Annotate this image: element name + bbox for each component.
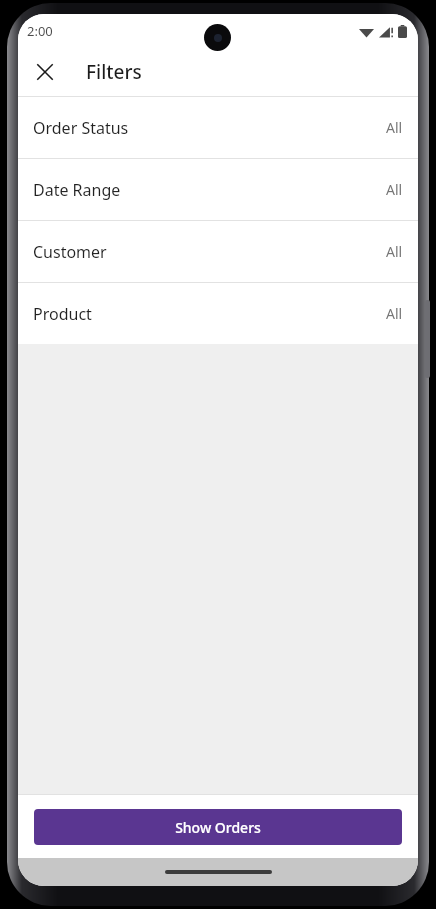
- staticText: Date Range: [33, 179, 386, 201]
- button[interactable]: Product: [18, 283, 418, 344]
- staticText: Show Orders: [175, 818, 261, 837]
- button[interactable]: Show Orders: [34, 809, 402, 845]
- staticText: All: [386, 180, 403, 199]
- staticText: All: [386, 242, 403, 261]
- button[interactable]: Close: [29, 56, 61, 88]
- staticText: Customer: [33, 241, 386, 263]
- button[interactable]: Order Status: [18, 97, 418, 158]
- staticText: All: [386, 304, 403, 323]
- button[interactable]: Customer: [18, 221, 418, 282]
- staticText: Product: [33, 303, 386, 325]
- staticText: Order Status: [33, 117, 386, 139]
- staticText: 2:00: [27, 22, 53, 40]
- staticText: All: [386, 118, 403, 137]
- staticText: Filters: [86, 59, 142, 85]
- button[interactable]: Date Range: [18, 159, 418, 220]
